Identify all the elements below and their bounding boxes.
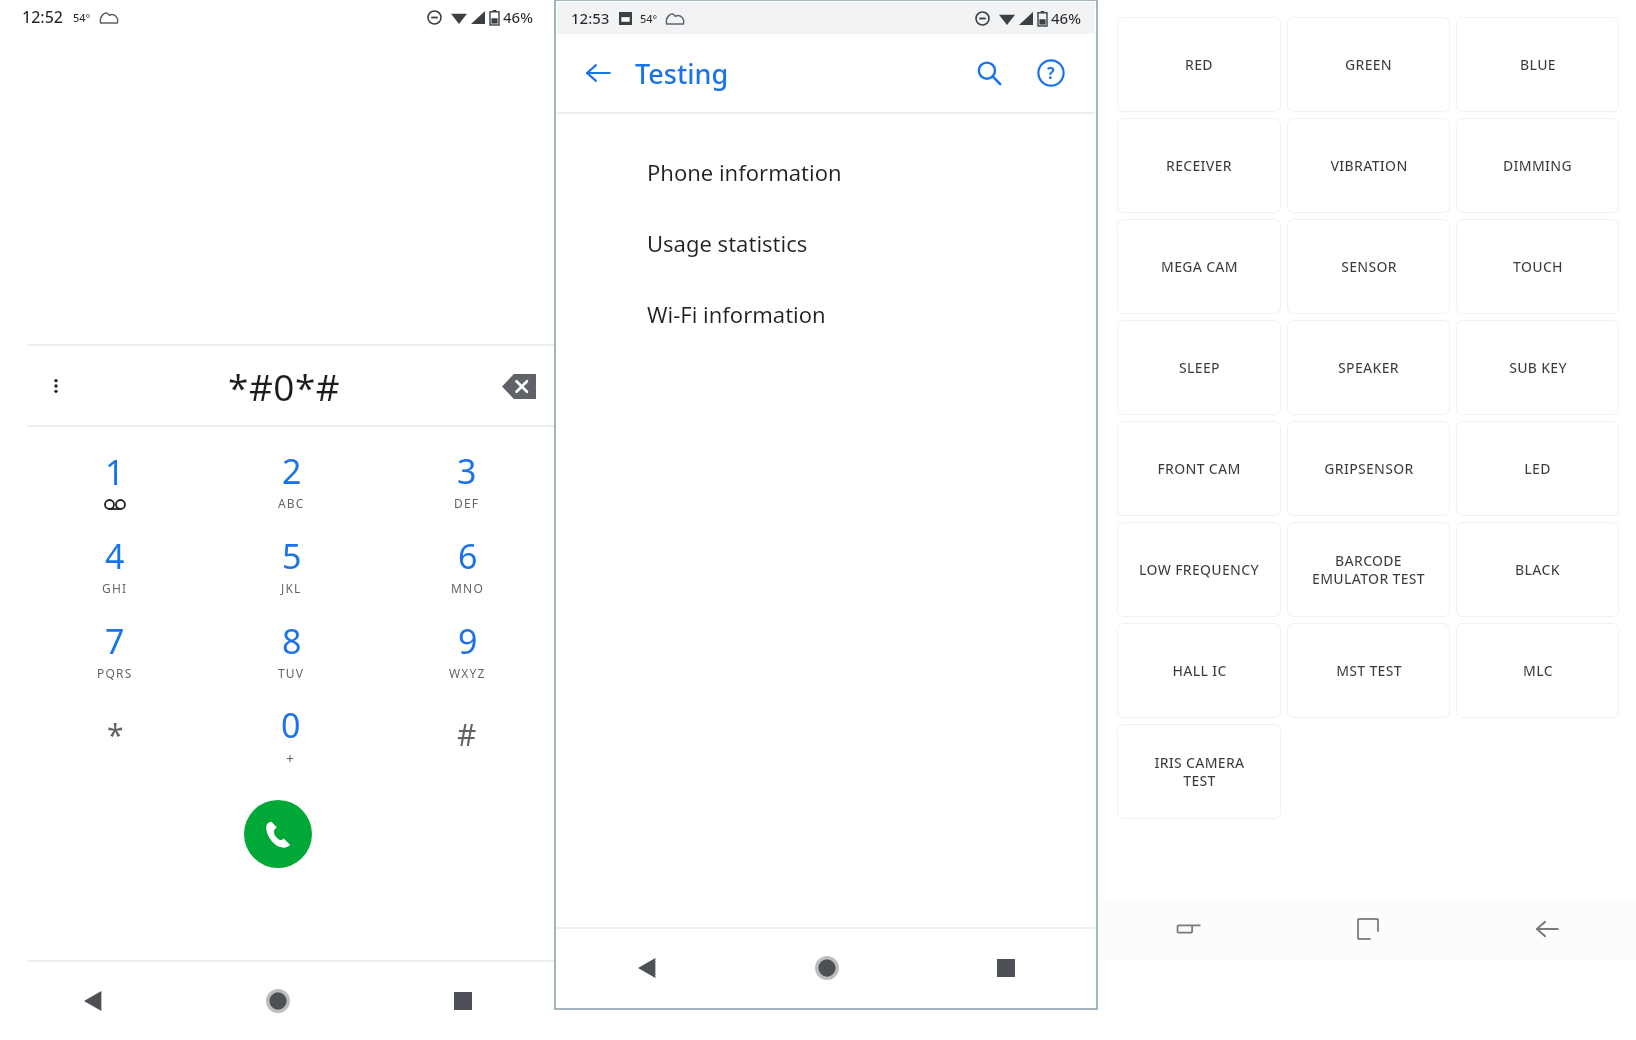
button[interactable]: Usage statistics	[557, 207, 1095, 278]
button[interactable]: HALL IC	[1117, 623, 1281, 718]
staticText: RED	[1185, 55, 1213, 74]
staticText: DEF	[454, 495, 480, 511]
button[interactable]: 7	[27, 607, 203, 692]
staticText: SENSOR	[1341, 257, 1397, 276]
button[interactable]: Back	[557, 929, 737, 1007]
staticText: PQRS	[97, 665, 133, 681]
button[interactable]: *	[27, 692, 203, 777]
button[interactable]: GREEN	[1287, 17, 1450, 112]
button[interactable]: Back	[1457, 898, 1636, 960]
staticText: GRIPSENSOR	[1324, 459, 1414, 478]
button[interactable]: LED	[1456, 421, 1619, 516]
button[interactable]: MLC	[1456, 623, 1619, 718]
staticText: 8	[282, 618, 302, 664]
button[interactable]: SENSOR	[1287, 219, 1450, 314]
staticText: MNO	[451, 580, 484, 596]
staticText: HALL IC	[1172, 661, 1227, 680]
staticText: 46%	[503, 7, 533, 27]
button[interactable]: Recents	[1100, 898, 1278, 960]
button[interactable]: LOW FREQUENCY	[1117, 522, 1281, 617]
button[interactable]: #	[379, 692, 555, 777]
button[interactable]: VIBRATION	[1287, 118, 1450, 213]
staticText: *	[107, 714, 124, 755]
staticText: TUV	[278, 665, 305, 681]
button[interactable]: Home	[1278, 898, 1457, 960]
staticText: SPEAKER	[1338, 358, 1399, 377]
staticText: JKL	[281, 580, 302, 596]
button[interactable]: SUB KEY	[1456, 320, 1619, 415]
button[interactable]: 0	[203, 692, 379, 777]
button[interactable]: BARCODE EMULATOR TEST	[1287, 522, 1450, 617]
button[interactable]: More options	[27, 357, 85, 415]
staticText: GHI	[102, 580, 128, 596]
staticText: 3	[457, 448, 477, 494]
staticText: IRIS CAMERA TEST	[1154, 753, 1245, 790]
button[interactable]: 4	[27, 522, 203, 607]
staticText: 1	[105, 449, 125, 495]
staticText: ABC	[278, 495, 305, 511]
button[interactable]: SPEAKER	[1287, 320, 1450, 415]
button[interactable]: TOUCH	[1456, 219, 1619, 314]
staticText: SLEEP	[1179, 358, 1220, 377]
staticText: 0	[281, 702, 301, 748]
staticText: MLC	[1523, 661, 1553, 680]
staticText: +	[286, 749, 296, 768]
staticText: 54°	[73, 10, 91, 25]
button[interactable]: 2	[203, 437, 379, 522]
button[interactable]: Backspace	[483, 350, 555, 422]
button[interactable]: DIMMING	[1456, 118, 1619, 213]
button[interactable]: SLEEP	[1117, 320, 1281, 415]
button[interactable]: MEGA CAM	[1117, 219, 1281, 314]
button[interactable]: Back	[0, 962, 185, 1040]
staticText: MST TEST	[1336, 661, 1402, 680]
button[interactable]: Help	[1025, 47, 1077, 99]
staticText: 9	[458, 618, 478, 664]
staticText: SUB KEY	[1509, 358, 1567, 377]
staticText: BLUE	[1520, 55, 1556, 74]
staticText: WXYZ	[449, 665, 486, 681]
button[interactable]: Call	[244, 800, 312, 868]
button[interactable]: Home	[737, 929, 916, 1007]
staticText: Wi-Fi information	[647, 299, 826, 329]
staticText: 46%	[1051, 8, 1081, 28]
button[interactable]: BLACK	[1456, 522, 1619, 617]
button[interactable]: 8	[203, 607, 379, 692]
staticText: ?	[1047, 62, 1055, 84]
staticText: LOW FREQUENCY	[1139, 560, 1259, 579]
staticText: Testing	[635, 55, 729, 92]
staticText: Phone information	[647, 157, 842, 187]
staticText: TOUCH	[1513, 257, 1563, 276]
button[interactable]: 5	[203, 522, 379, 607]
staticText: FRONT CAM	[1157, 459, 1241, 478]
staticText: VIBRATION	[1330, 156, 1408, 175]
button[interactable]: MST TEST	[1287, 623, 1450, 718]
button[interactable]: Recents	[916, 929, 1095, 1007]
button[interactable]: BLUE	[1456, 17, 1619, 112]
button[interactable]: Home	[185, 962, 370, 1040]
button[interactable]: RED	[1117, 17, 1281, 112]
staticText: 4	[105, 533, 125, 579]
staticText: 2	[282, 448, 302, 494]
staticText: 7	[105, 618, 125, 664]
staticText: MEGA CAM	[1161, 257, 1238, 276]
button[interactable]: Wi-Fi information	[557, 278, 1095, 349]
staticText: *#0*#	[228, 361, 341, 411]
staticText: #	[457, 714, 477, 755]
button[interactable]: 1	[27, 437, 203, 522]
staticText: RECEIVER	[1166, 156, 1232, 175]
staticText: GREEN	[1345, 55, 1392, 74]
staticText: 12:52	[22, 6, 63, 28]
button[interactable]: 9	[379, 607, 555, 692]
button[interactable]: 6	[379, 522, 555, 607]
button[interactable]: Phone information	[557, 136, 1095, 207]
button[interactable]: 3	[379, 437, 555, 522]
button[interactable]: FRONT CAM	[1117, 421, 1281, 516]
staticText: BLACK	[1515, 560, 1560, 579]
button[interactable]: Recents	[370, 962, 555, 1040]
button[interactable]: Back	[573, 48, 623, 98]
button[interactable]: IRIS CAMERA TEST	[1117, 724, 1281, 819]
button[interactable]: GRIPSENSOR	[1287, 421, 1450, 516]
button[interactable]: RECEIVER	[1117, 118, 1281, 213]
button[interactable]: Search	[963, 47, 1015, 99]
staticText: Usage statistics	[647, 228, 808, 258]
